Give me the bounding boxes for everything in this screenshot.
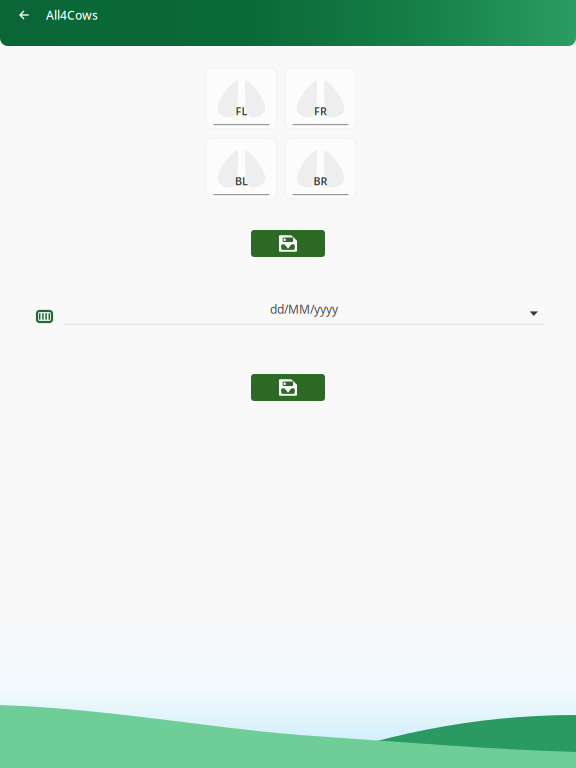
staticText: All4Cows [46, 7, 98, 23]
button[interactable]: FR [285, 68, 356, 129]
button[interactable]: BL [206, 138, 277, 199]
button[interactable]: Scan barcode [33, 305, 56, 328]
button[interactable]: FL [206, 68, 277, 129]
button[interactable]: Back [11, 2, 37, 28]
button[interactable]: Save record [251, 374, 325, 401]
staticText: dd/MM/yyyy [270, 301, 338, 317]
staticText: BR [313, 174, 327, 188]
button[interactable]: dd/MM/yyyy [64, 305, 544, 329]
button[interactable]: Save [251, 230, 325, 257]
staticText: BL [235, 174, 248, 188]
button[interactable]: BR [285, 138, 356, 199]
staticText: FR [314, 104, 327, 118]
staticText: FL [235, 104, 247, 118]
